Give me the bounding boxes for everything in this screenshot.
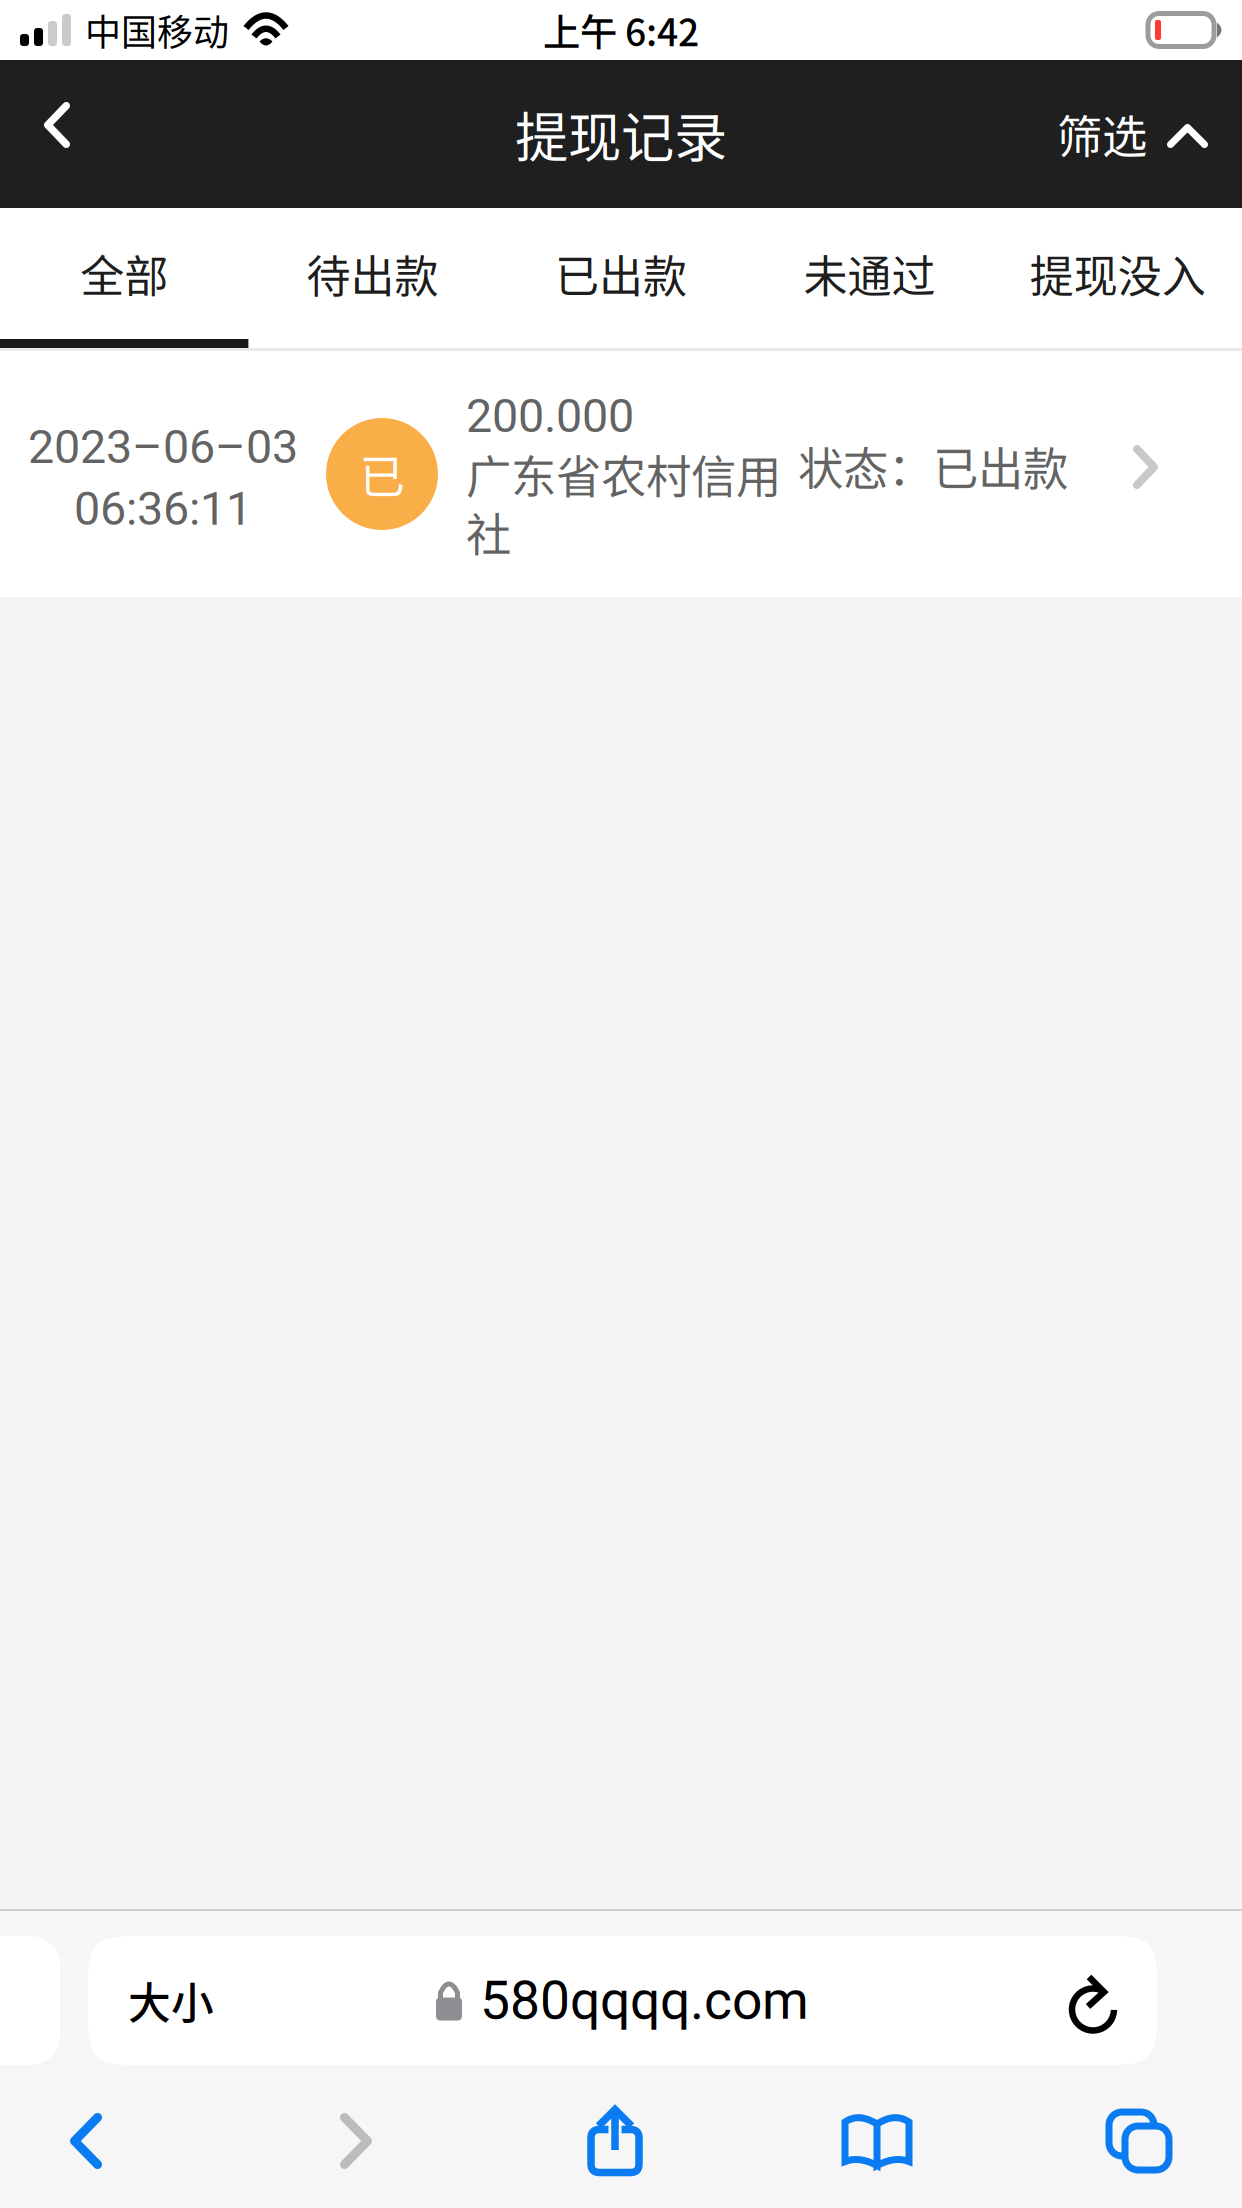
staticText: 大小 xyxy=(128,1970,214,2031)
staticText: 提现没入 xyxy=(1030,242,1206,305)
button[interactable]: 筛选 xyxy=(1057,60,1242,208)
button[interactable]: 已出款 xyxy=(497,208,745,348)
staticText: 未通过 xyxy=(803,242,935,305)
staticText: 200.000 xyxy=(466,389,634,443)
staticText: 已 xyxy=(359,441,404,507)
button[interactable]: 返回 xyxy=(0,60,124,208)
staticText: 提现记录 xyxy=(515,95,727,173)
button[interactable]: 书签 xyxy=(690,2095,1064,2187)
button[interactable]: 待出款 xyxy=(248,208,497,348)
button[interactable]: 后退 xyxy=(0,2095,172,2187)
staticText: 2023–06–03 xyxy=(28,420,298,474)
staticText: 全部 xyxy=(80,242,168,305)
staticText: 上午 6:42 xyxy=(543,3,699,57)
staticText: 已出款 xyxy=(555,242,687,305)
button[interactable]: 大小 xyxy=(88,1936,1157,2065)
staticText: 广东省农村信用 xyxy=(466,441,781,507)
button[interactable]: 标签页 xyxy=(1064,2095,1214,2187)
button[interactable]: 未通过 xyxy=(745,208,994,348)
staticText: 状态：已出款 xyxy=(798,433,1068,499)
button[interactable]: 分享 xyxy=(540,2095,690,2187)
staticText: 06:36:11 xyxy=(74,481,252,536)
staticText: 580qqqq.com xyxy=(480,1969,809,2032)
staticText: 中国移动 xyxy=(85,4,229,56)
staticText: 待出款 xyxy=(307,242,439,305)
staticText: 社 xyxy=(466,499,511,565)
button[interactable]: 全部 xyxy=(0,208,248,348)
button[interactable]: 2023–06–03 xyxy=(0,351,1242,597)
staticText: 筛选 xyxy=(1057,101,1147,167)
button[interactable]: 提现没入 xyxy=(994,208,1242,348)
button[interactable]: 前进 xyxy=(172,2095,540,2187)
